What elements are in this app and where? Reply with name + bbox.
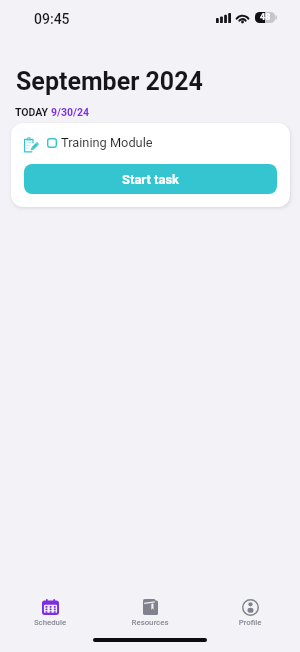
staticText: Schedule	[13, 618, 87, 627]
button[interactable]: Resources tab	[113, 592, 187, 628]
staticText: 9/30/24	[51, 106, 89, 118]
button[interactable]: Toggle Training Module complete	[47, 138, 57, 148]
staticText: TODAY	[15, 106, 51, 118]
staticText: Training Module	[61, 135, 153, 150]
staticText: Start task	[122, 172, 180, 187]
button[interactable]: Schedule tab	[13, 592, 87, 628]
button[interactable]: Profile tab	[213, 592, 287, 628]
staticText: Resources	[113, 618, 187, 627]
staticText: 09:45	[34, 11, 70, 27]
staticText: September 2024	[16, 67, 203, 96]
staticText: 48	[260, 12, 271, 23]
staticText: Profile	[213, 618, 287, 627]
button[interactable]: Start task	[24, 164, 277, 194]
